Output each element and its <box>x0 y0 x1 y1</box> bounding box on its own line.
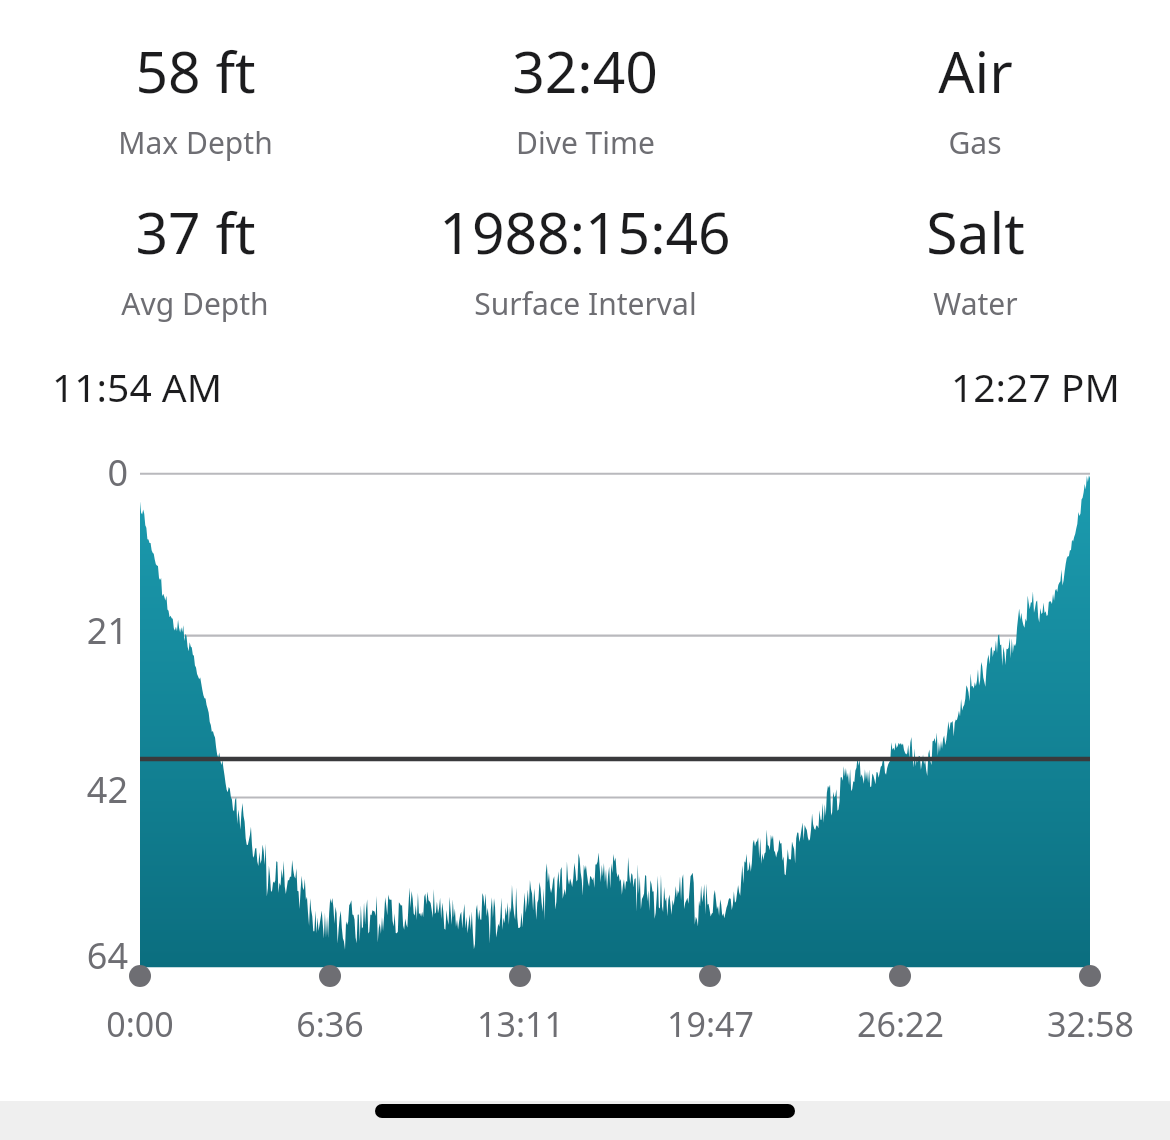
staticText: 26:22 <box>857 1001 944 1047</box>
button[interactable]: Salt <box>780 193 1170 324</box>
staticText: 1988:15:46 <box>439 193 731 271</box>
staticText: 32:40 <box>512 32 658 110</box>
staticText: Water <box>933 283 1018 324</box>
staticText: Air <box>938 32 1013 110</box>
staticText: Avg Depth <box>121 283 269 324</box>
staticText: Max Depth <box>118 122 273 163</box>
button[interactable]: 37 ft <box>0 193 390 324</box>
staticText: Gas <box>948 122 1002 163</box>
staticText: 0 <box>36 448 128 497</box>
button[interactable]: 1988:15:46 <box>390 193 780 324</box>
staticText: 12:27 PM <box>951 360 1120 413</box>
button[interactable]: Dive depth profile chart <box>0 441 1170 1101</box>
button[interactable]: 58 ft <box>0 32 390 163</box>
staticText: 32:58 <box>1047 1001 1134 1047</box>
staticText: 58 ft <box>135 32 256 110</box>
button[interactable]: Air <box>780 32 1170 163</box>
staticText: 21 <box>36 606 128 655</box>
staticText: 6:36 <box>296 1001 364 1047</box>
staticText: 0:00 <box>106 1001 174 1047</box>
staticText: 64 <box>36 931 128 980</box>
staticText: Salt <box>926 193 1025 271</box>
staticText: 13:11 <box>477 1001 564 1047</box>
button[interactable]: 32:40 <box>390 32 780 163</box>
staticText: 42 <box>36 765 128 814</box>
staticText: Surface Interval <box>474 283 697 324</box>
staticText: Dive Time <box>516 122 655 163</box>
staticText: 19:47 <box>667 1001 754 1047</box>
staticText: 11:54 AM <box>52 360 223 413</box>
staticText: 37 ft <box>135 193 256 271</box>
